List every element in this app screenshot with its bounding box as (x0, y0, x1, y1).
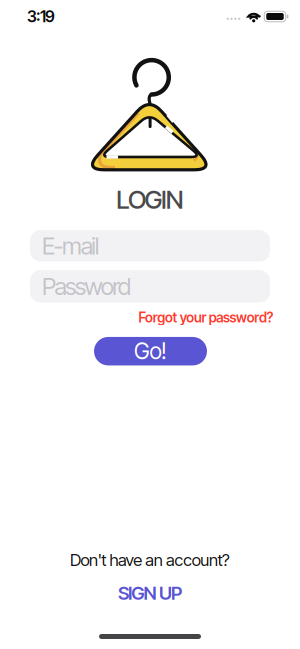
staticText: LOGIN (116, 184, 184, 215)
textField[interactable]: Password (30, 270, 270, 303)
staticText: E-mail (42, 231, 100, 260)
button[interactable]: Go! (94, 337, 207, 365)
staticText: Don't have an account? (70, 550, 230, 570)
button[interactable]: Forgot your password? (138, 309, 273, 326)
staticText: 3:19 (27, 7, 55, 26)
button[interactable]: SIGN UP (118, 582, 182, 604)
textField[interactable]: E-mail (30, 230, 270, 262)
staticText: Password (42, 272, 131, 301)
staticText: Forgot your password? (138, 309, 273, 326)
staticText: Go! (134, 338, 167, 365)
staticText: SIGN UP (118, 582, 182, 604)
